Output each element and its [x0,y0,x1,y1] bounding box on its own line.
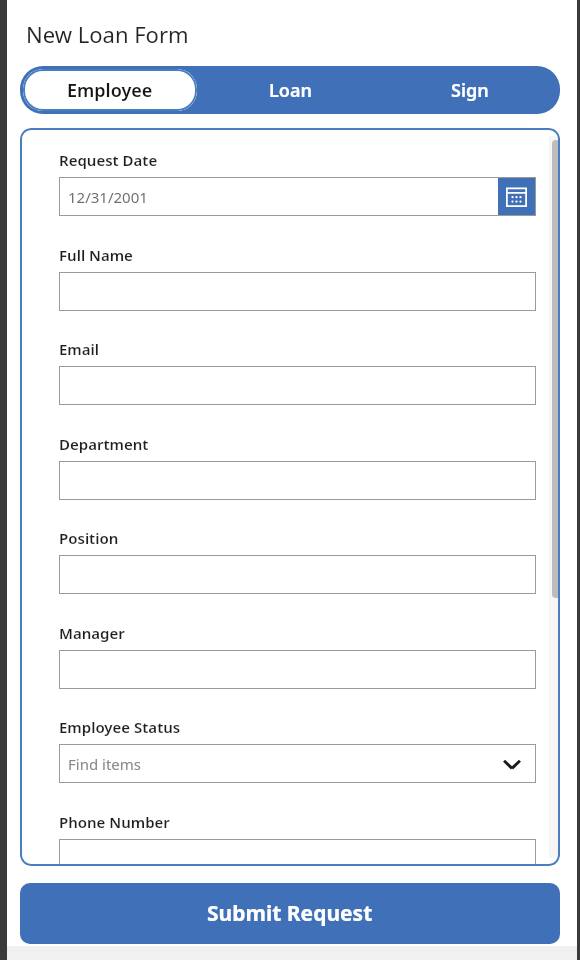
button[interactable]: Pick date [498,178,535,215]
staticText: Position [59,528,119,548]
button[interactable]: Sign [380,66,560,114]
staticText: Submit Request [207,899,373,928]
staticText: Email [59,339,100,359]
staticText: Employee [67,78,153,103]
staticText: Sign [451,78,489,103]
button[interactable] [59,272,536,311]
button[interactable] [59,461,536,500]
staticText: New Loan Form [26,19,189,49]
staticText: 12/31/2001 [68,187,148,207]
staticText: Department [59,434,149,454]
button[interactable] [59,555,536,594]
staticText: Request Date [59,150,158,170]
button[interactable]: Find items [59,744,536,783]
staticText: Loan [269,78,312,103]
button[interactable]: Open dropdown [499,751,525,777]
staticText: Phone Number [59,812,170,832]
staticText: Find items [68,754,142,774]
button[interactable] [59,366,536,405]
button[interactable]: Loan [200,66,380,114]
button[interactable] [59,839,536,866]
staticText: Full Name [59,245,133,265]
button[interactable]: Submit Request [20,883,560,944]
staticText: Employee Status [59,717,181,737]
button[interactable]: 12/31/2001 [59,177,536,216]
button[interactable] [59,650,536,689]
staticText: Manager [59,623,125,643]
button[interactable]: Employee [23,69,197,111]
